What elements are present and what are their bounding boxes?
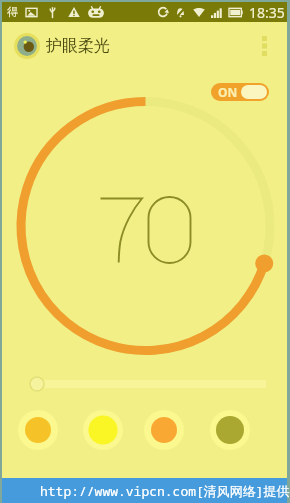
button[interactable] — [2, 407, 287, 453]
staticText: http://www.vipcn.com[清风网络]提供 — [40, 482, 290, 500]
button[interactable] — [2, 372, 287, 396]
button[interactable]: More options — [249, 31, 279, 61]
staticText: 18:35 — [249, 3, 285, 22]
staticText: 得 — [7, 5, 18, 19]
button[interactable]: ON — [211, 83, 269, 101]
staticText: 护眼柔光 — [46, 36, 110, 56]
staticText: ON — [218, 84, 238, 100]
